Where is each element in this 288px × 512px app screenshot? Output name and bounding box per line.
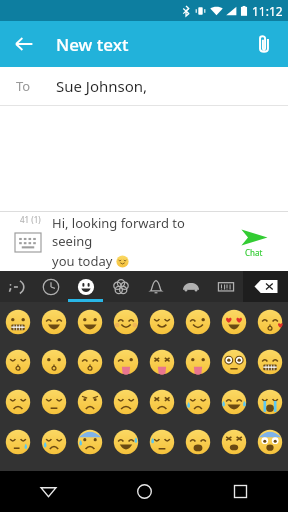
button[interactable]: Backspace [243,271,288,302]
button[interactable]: Car [173,271,208,302]
button[interactable]: Recent apps [192,471,288,512]
button[interactable]: Emoji [216,422,252,462]
button[interactable]: Recent-wink [0,271,34,302]
button[interactable]: Emoji [216,302,252,342]
staticText: New text [56,33,129,56]
button[interactable]: Home [96,471,192,512]
button[interactable]: Emoji [0,422,36,462]
staticText: Chat [245,247,263,258]
button[interactable]: To [0,67,288,105]
button[interactable]: Emoji [252,422,288,462]
staticText: Sue Johnson, [56,76,148,96]
staticText: To [16,77,31,95]
button[interactable]: Smileys [68,271,103,302]
button[interactable]: Emoji [0,342,36,382]
button[interactable]: Emoji [108,422,144,462]
button[interactable]: Emoji [252,382,288,422]
button[interactable]: Emoji [36,342,72,382]
button[interactable]: Attach [244,24,284,64]
button[interactable]: Emoji [252,302,288,342]
button[interactable]: Emoji [216,342,252,382]
button[interactable]: Emoji [144,342,180,382]
button[interactable]: Emoji [36,422,72,462]
button[interactable]: Emoji [144,302,180,342]
button[interactable]: Symbols [208,271,243,302]
staticText: 11:12 [252,3,283,19]
button[interactable]: Emoji [108,342,144,382]
button[interactable]: Flower [103,271,138,302]
button[interactable]: Emoji [252,342,288,382]
button[interactable]: Back [4,24,44,64]
button[interactable]: Emoji [0,382,36,422]
staticText: 41 (1) [20,214,41,225]
button[interactable]: Send [226,214,282,270]
button[interactable]: Recent [34,271,68,302]
button[interactable]: Emoji [36,382,72,422]
button[interactable]: Emoji [144,422,180,462]
button[interactable]: Emoji [180,382,216,422]
button[interactable]: Emoji [72,342,108,382]
button[interactable]: Switch keyboard [12,226,44,258]
button[interactable]: Emoji [36,302,72,342]
button[interactable]: Emoji [144,382,180,422]
button[interactable]: Emoji [216,382,252,422]
button[interactable]: Emoji [108,382,144,422]
button[interactable]: Emoji [180,342,216,382]
button[interactable]: Emoji [72,422,108,462]
button[interactable]: Emoji [0,302,36,342]
button[interactable]: Emoji [180,422,216,462]
button[interactable]: Emoji [72,382,108,422]
staticText: Hi, looking forward to seeing [52,214,218,250]
button[interactable]: Emoji [108,302,144,342]
button[interactable]: Emoji [180,302,216,342]
button[interactable]: Bell [138,271,173,302]
staticText: you today [52,252,116,270]
button[interactable]: Emoji [72,302,108,342]
button[interactable]: Back [0,471,96,512]
